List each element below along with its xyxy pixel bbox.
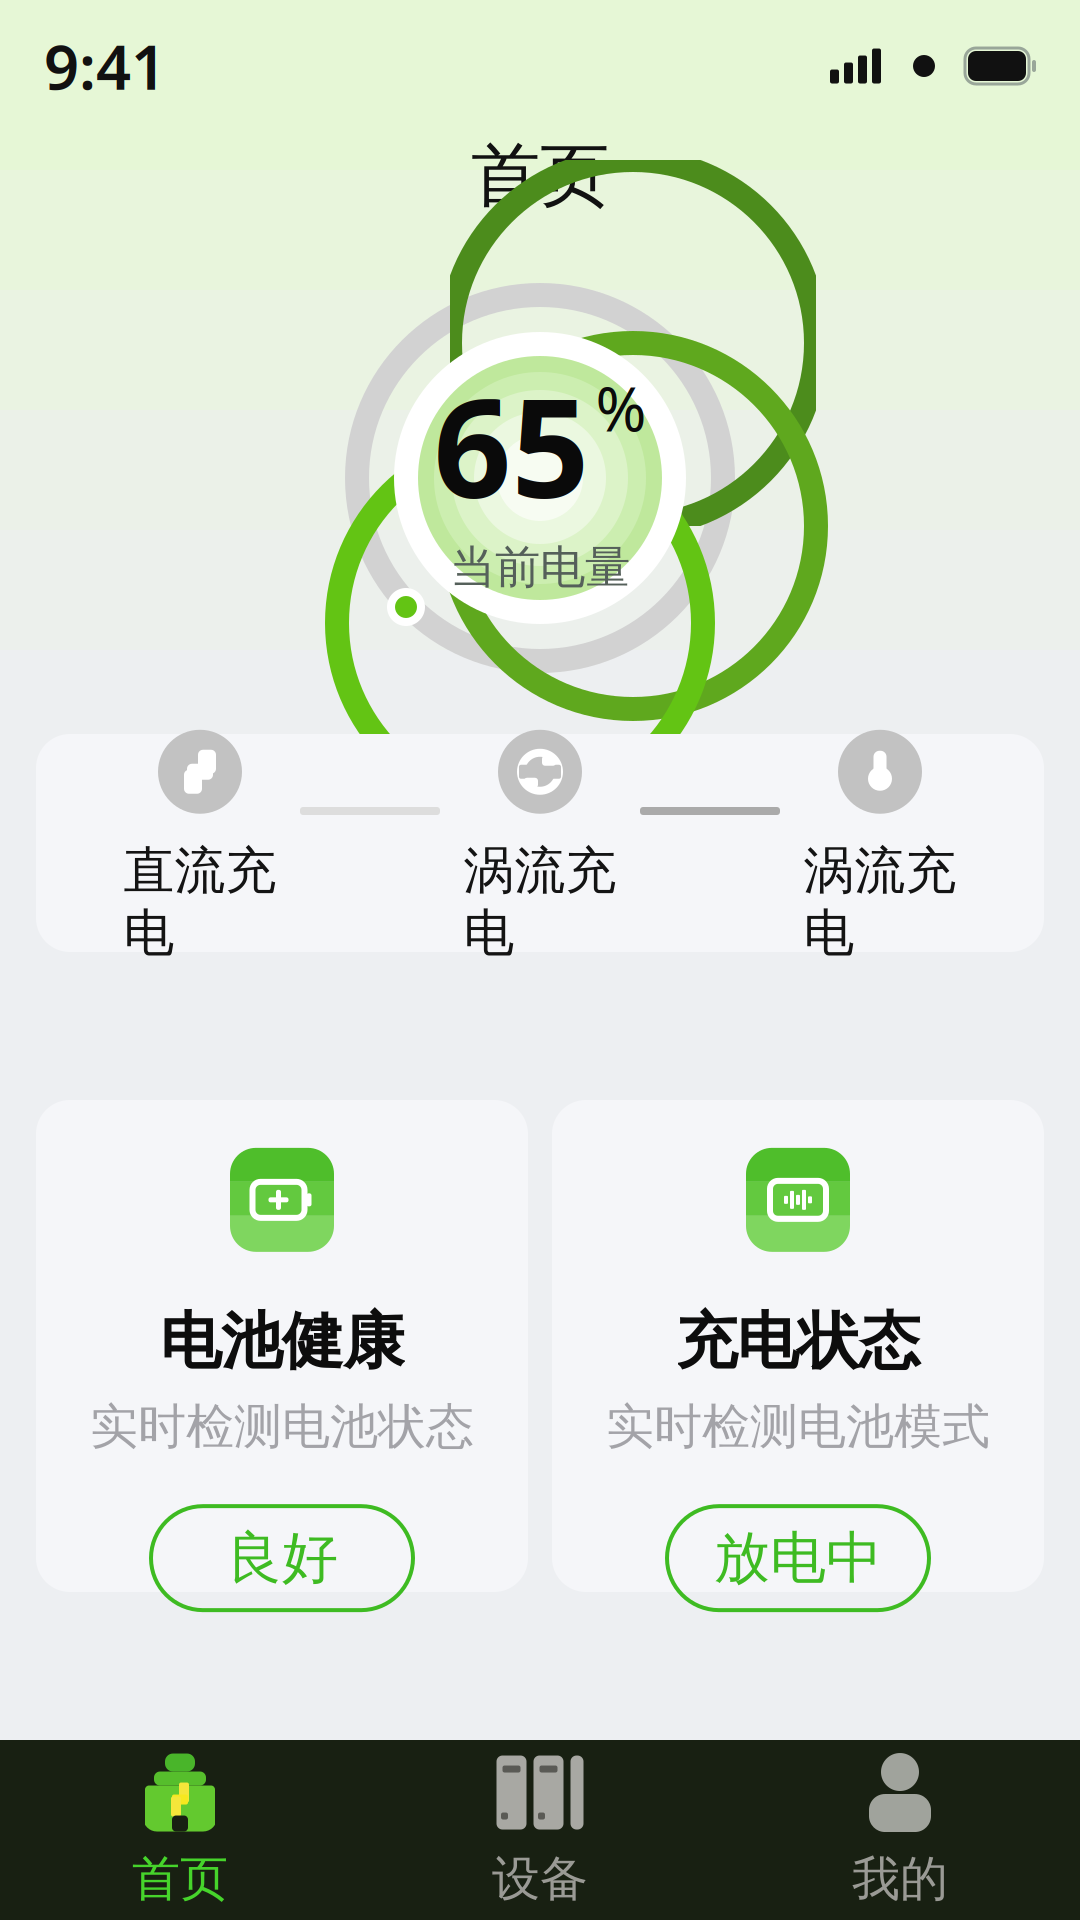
staticText: 放电中: [714, 1524, 882, 1593]
staticText: %: [595, 367, 646, 448]
button[interactable]: 充电状态: [552, 1100, 1044, 1592]
staticText: 实时检测电池模式: [606, 1397, 990, 1456]
staticText: 涡流充电: [463, 840, 616, 964]
staticText: 首页: [132, 1849, 228, 1908]
staticText: 涡流充电: [803, 840, 956, 964]
staticText: 电池健康: [160, 1304, 404, 1379]
button[interactable]: 良好: [151, 1506, 413, 1610]
staticText: 65: [433, 355, 589, 535]
button[interactable]: 设备: [360, 1740, 720, 1920]
staticText: 良好: [226, 1524, 338, 1593]
staticText: 首页: [471, 133, 609, 219]
staticText: 直流充电: [123, 840, 276, 964]
staticText: 实时检测电池状态: [90, 1397, 474, 1456]
button[interactable]: 首页: [0, 1740, 360, 1920]
staticText: 我的: [852, 1849, 948, 1908]
staticText: 当前电量: [450, 539, 630, 595]
staticText: 设备: [492, 1849, 588, 1908]
button[interactable]: 我的: [720, 1740, 1080, 1920]
staticText: 充电状态: [676, 1304, 920, 1379]
staticText: 9:41: [44, 25, 166, 107]
button[interactable]: 电池健康: [36, 1100, 528, 1592]
button[interactable]: 放电中: [667, 1506, 929, 1610]
